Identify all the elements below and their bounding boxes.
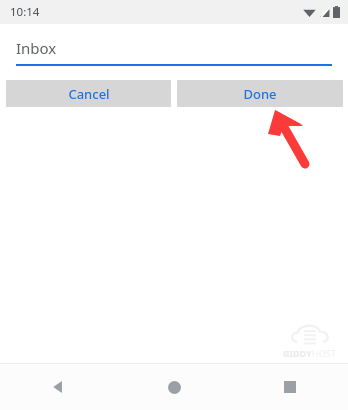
button[interactable]: Recent apps	[232, 364, 348, 410]
button[interactable]: Inbox	[16, 38, 332, 66]
staticText: Done	[243, 85, 277, 103]
button[interactable]: Back	[0, 364, 116, 410]
button[interactable]: Cancel	[6, 80, 171, 107]
staticText: HOST	[312, 347, 336, 359]
staticText: Inbox	[16, 38, 57, 58]
staticText: Cancel	[68, 85, 110, 103]
button[interactable]: Done	[177, 80, 343, 107]
staticText: 10:14	[10, 4, 40, 20]
button[interactable]: Home	[116, 364, 232, 410]
staticText: GIDDY	[283, 347, 312, 359]
